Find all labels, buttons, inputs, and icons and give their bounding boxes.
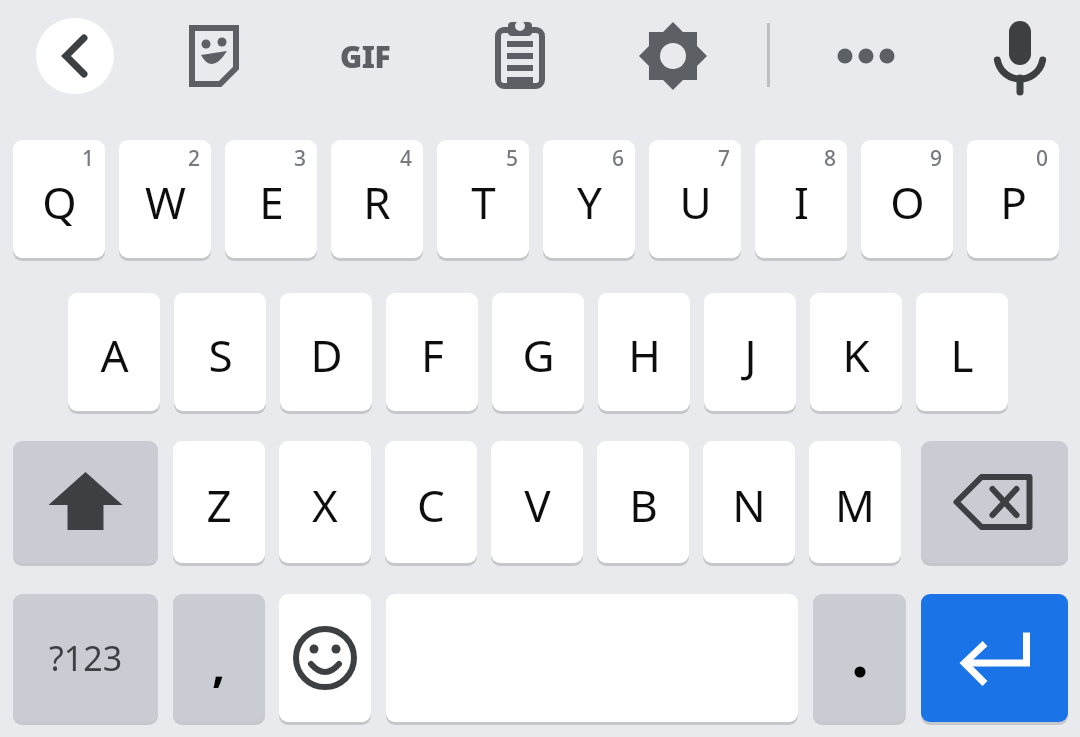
staticText: S (208, 325, 233, 385)
button[interactable]: W (119, 140, 211, 258)
button[interactable]: D (280, 293, 372, 411)
staticText: Z (206, 475, 232, 535)
staticText: 9 (930, 144, 943, 173)
staticText: , (212, 633, 226, 696)
staticText: 8 (824, 144, 837, 173)
staticText: F (421, 325, 444, 385)
button[interactable]: U (649, 140, 741, 258)
button[interactable]: K (810, 293, 902, 411)
button[interactable]: Backspace (921, 441, 1068, 563)
button[interactable]: V (491, 441, 583, 563)
button[interactable]: T (437, 140, 529, 258)
staticText: ?123 (49, 635, 123, 681)
button[interactable]: Z (173, 441, 265, 563)
button[interactable]: Settings (638, 22, 708, 90)
button[interactable]: S (174, 293, 266, 411)
staticText: X (312, 475, 338, 535)
staticText: 3 (294, 144, 307, 173)
button[interactable]: GIF (330, 22, 400, 90)
button[interactable]: I (755, 140, 847, 258)
button[interactable]: Q (13, 140, 105, 258)
button[interactable]: Shift (13, 441, 158, 563)
staticText: 6 (612, 144, 625, 173)
staticText: GIF (340, 36, 391, 77)
button[interactable]: Stickers (180, 22, 248, 90)
staticText: M (835, 475, 875, 535)
staticText: R (363, 172, 391, 232)
button[interactable]: J (704, 293, 796, 411)
staticText: I (794, 172, 809, 232)
staticText: D (310, 325, 343, 385)
button[interactable]: H (598, 293, 690, 411)
button[interactable]: Symbols (13, 594, 158, 722)
staticText: E (259, 172, 284, 232)
staticText: O (890, 172, 925, 232)
staticText: K (842, 325, 870, 385)
button[interactable]: G (492, 293, 584, 411)
staticText: L (950, 325, 974, 385)
staticText: 5 (506, 144, 519, 173)
button[interactable]: O (861, 140, 953, 258)
staticText: 0 (1036, 144, 1049, 173)
button[interactable]: L (916, 293, 1008, 411)
staticText: W (145, 172, 186, 232)
button[interactable]: M (809, 441, 901, 563)
button[interactable]: F (386, 293, 478, 411)
staticText: B (629, 475, 658, 535)
button[interactable]: Back (36, 18, 114, 94)
button[interactable]: Period (813, 594, 906, 722)
staticText: T (471, 172, 496, 232)
button[interactable]: P (967, 140, 1059, 258)
staticText: 1 (82, 144, 95, 173)
staticText: P (1000, 172, 1027, 232)
button[interactable]: A (68, 293, 160, 411)
button[interactable]: Enter (921, 594, 1068, 722)
button[interactable]: Comma (173, 594, 265, 722)
button[interactable]: E (225, 140, 317, 258)
staticText: 2 (188, 144, 201, 173)
button[interactable]: R (331, 140, 423, 258)
button[interactable]: Voice input (986, 18, 1054, 94)
button[interactable]: Emoji (279, 594, 371, 722)
staticText: G (522, 325, 555, 385)
staticText: J (744, 325, 757, 385)
staticText: 7 (718, 144, 731, 173)
staticText: H (628, 325, 661, 385)
staticText: Q (42, 172, 77, 232)
button[interactable]: C (385, 441, 477, 563)
button[interactable]: Y (543, 140, 635, 258)
button[interactable]: B (597, 441, 689, 563)
staticText: 4 (400, 144, 413, 173)
staticText: Y (577, 172, 602, 232)
button[interactable]: Clipboard (486, 20, 554, 92)
staticText: N (732, 475, 766, 535)
button[interactable]: More options (832, 22, 900, 90)
staticText: A (100, 325, 129, 385)
staticText: U (679, 172, 712, 232)
button[interactable]: N (703, 441, 795, 563)
staticText: C (417, 475, 445, 535)
button[interactable]: X (279, 441, 371, 563)
staticText: V (524, 475, 551, 535)
